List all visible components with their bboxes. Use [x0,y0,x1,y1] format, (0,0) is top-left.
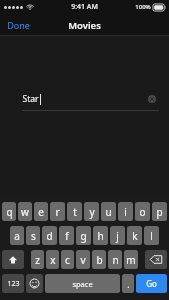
staticText: a [14,229,20,243]
staticText: r [55,205,60,219]
staticText: 123 [7,279,20,289]
button[interactable]: Backspace [145,250,167,269]
button[interactable]: r [50,202,65,221]
staticText: 100% [135,3,151,11]
button[interactable]: m [124,250,138,269]
button[interactable]: u [101,202,116,221]
staticText: c [65,253,70,267]
staticText: y [89,205,95,219]
staticText: l [150,229,153,243]
button[interactable]: w [18,202,32,221]
button[interactable]: 123 [2,274,24,293]
button[interactable]: f [59,226,74,245]
staticText: x [50,253,56,267]
staticText: f [65,229,69,243]
button[interactable]: v [76,250,90,269]
button[interactable]: n [108,250,122,269]
staticText: b [96,253,103,267]
staticText: q [6,205,13,219]
button[interactable]: x [46,250,59,269]
button[interactable]: Emoji [26,274,43,293]
button[interactable]: d [42,226,57,245]
button[interactable]: o [135,202,150,221]
button[interactable]: s [26,226,40,245]
staticText: m [126,253,136,267]
button[interactable]: g [76,226,91,245]
staticText: w [21,205,29,219]
button[interactable]: e [34,202,48,221]
staticText: p [156,205,163,219]
button[interactable]: c [61,250,74,269]
button[interactable]: space [45,274,120,293]
staticText: g [80,229,87,243]
staticText: v [80,253,86,267]
staticText: u [105,205,112,219]
button[interactable]: j [110,226,125,245]
staticText: o [139,205,146,219]
button[interactable]: i [118,202,133,221]
staticText: Go [146,278,157,289]
staticText: n [112,253,119,267]
button[interactable]: b [92,250,106,269]
staticText: j [116,229,119,243]
staticText: k [132,229,138,243]
staticText: z [35,253,40,267]
button[interactable]: Clear text [145,92,159,106]
staticText: s [31,229,36,243]
button[interactable]: q [2,202,16,221]
staticText: space [72,279,93,289]
staticText: 9:41 AM [71,2,98,12]
button[interactable]: z [31,250,44,269]
button[interactable]: Done [0,16,37,34]
staticText: t [73,205,77,219]
staticText: e [38,205,44,219]
button[interactable]: t [67,202,82,221]
button[interactable]: k [127,226,142,245]
staticText: d [46,229,53,243]
button[interactable]: l [144,226,159,245]
staticText: Star [22,93,39,105]
staticText: Done [7,19,30,31]
button[interactable]: a [10,226,24,245]
button[interactable]: y [84,202,99,221]
staticText: h [97,229,104,243]
button[interactable]: Star [22,88,159,110]
button[interactable]: Go [136,274,167,293]
button[interactable]: h [93,226,108,245]
button[interactable]: p [152,202,167,221]
button[interactable]: Shift [2,250,24,269]
staticText: Movies [68,19,101,32]
button[interactable]: . [122,274,134,293]
staticText: i [124,205,127,219]
staticText: . [127,278,130,290]
